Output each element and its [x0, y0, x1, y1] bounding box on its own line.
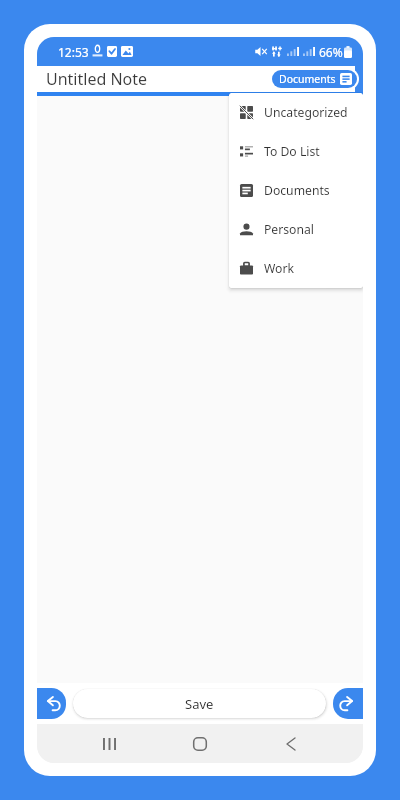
- button[interactable]: Documents: [229, 171, 363, 210]
- staticText: Documents: [264, 182, 330, 199]
- button[interactable]: To Do List: [229, 132, 363, 171]
- button[interactable]: Save: [73, 689, 326, 718]
- button[interactable]: Documents: [272, 70, 357, 88]
- button[interactable]: Recents: [94, 729, 124, 759]
- staticText: Save: [185, 695, 214, 713]
- staticText: Documents: [279, 72, 336, 86]
- button[interactable]: Home: [185, 729, 215, 759]
- button[interactable]: Uncategorized: [229, 93, 363, 132]
- staticText: 66%: [319, 44, 343, 60]
- staticText: Personal: [264, 221, 315, 238]
- staticText: Uncategorized: [264, 104, 348, 121]
- staticText: Untitled Note: [46, 68, 148, 90]
- button[interactable]: Back: [276, 729, 306, 759]
- staticText: Work: [264, 260, 295, 277]
- button[interactable]: Redo: [333, 688, 363, 719]
- staticText: To Do List: [264, 143, 320, 160]
- button[interactable]: Personal: [229, 210, 363, 249]
- button[interactable]: Undo: [37, 688, 66, 719]
- button[interactable]: Work: [229, 249, 363, 288]
- staticText: 12:53: [58, 44, 89, 60]
